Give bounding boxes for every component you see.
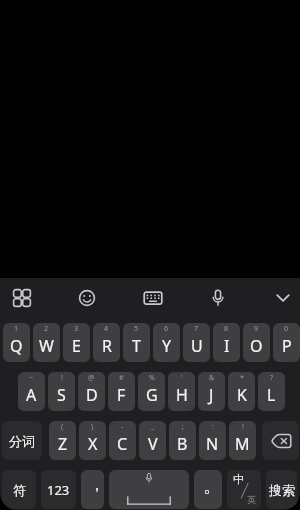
button[interactable]: !: [48, 372, 75, 411]
staticText: @: [88, 373, 95, 383]
button[interactable]: :: [199, 421, 226, 460]
staticText: 0: [284, 324, 289, 334]
staticText: B: [177, 433, 188, 455]
button[interactable]: -: [109, 421, 136, 460]
button[interactable]: 4: [93, 323, 120, 362]
button[interactable]: ~: [18, 372, 45, 411]
button[interactable]: [208, 288, 228, 308]
staticText: 符: [13, 482, 26, 498]
button[interactable]: *: [228, 372, 255, 411]
staticText: 6: [164, 324, 169, 334]
staticText: 搜索: [269, 482, 295, 498]
staticText: Q: [10, 335, 23, 357]
staticText: 8: [224, 324, 229, 334]
button[interactable]: [77, 288, 97, 308]
staticText: -: [121, 422, 124, 432]
staticText: O: [250, 335, 263, 357]
button[interactable]: 123: [41, 470, 76, 509]
staticText: ~: [29, 373, 34, 383]
staticText: N: [206, 433, 219, 455]
button[interactable]: ): [79, 421, 106, 460]
staticText: 2: [44, 324, 49, 334]
button[interactable]: 7: [183, 323, 210, 362]
staticText: C: [117, 433, 128, 455]
staticText: _: [151, 422, 155, 432]
staticText: K: [237, 384, 247, 406]
staticText: I: [224, 335, 230, 357]
button[interactable]: [109, 470, 189, 509]
button[interactable]: _: [139, 421, 166, 460]
button[interactable]: 中: [227, 470, 261, 509]
staticText: V: [148, 433, 158, 455]
button[interactable]: &: [198, 372, 225, 411]
button[interactable]: 1: [3, 323, 30, 362]
button[interactable]: [12, 288, 32, 308]
button[interactable]: [273, 288, 293, 308]
button[interactable]: 8: [213, 323, 240, 362]
staticText: M: [235, 433, 250, 455]
button[interactable]: 分词: [2, 421, 42, 460]
button[interactable]: !: [229, 421, 256, 460]
staticText: 9: [254, 324, 259, 334]
staticText: L: [267, 384, 276, 406]
button[interactable]: [262, 421, 299, 460]
staticText: &: [209, 373, 215, 383]
button[interactable]: %: [138, 372, 165, 411]
button[interactable]: ;: [169, 421, 196, 460]
staticText: %: [149, 373, 155, 383]
staticText: ;: [182, 422, 184, 432]
staticText: S: [57, 384, 66, 406]
staticText: G: [146, 384, 158, 406]
button[interactable]: 搜索: [266, 470, 297, 509]
staticText: !: [242, 422, 244, 432]
staticText: ?: [270, 373, 274, 383]
button[interactable]: 3: [63, 323, 90, 362]
staticText: !: [61, 373, 63, 383]
staticText: #: [119, 373, 124, 383]
staticText: D: [86, 384, 98, 406]
staticText: ): [91, 422, 94, 432]
button[interactable]: ，: [81, 470, 104, 509]
staticText: 中: [233, 472, 244, 486]
button[interactable]: 0: [273, 323, 300, 362]
staticText: ': [181, 373, 183, 383]
staticText: R: [102, 335, 112, 357]
staticText: 英: [247, 494, 256, 505]
staticText: 。: [203, 474, 222, 498]
button[interactable]: 6: [153, 323, 180, 362]
button[interactable]: ': [168, 372, 195, 411]
staticText: 3: [74, 324, 79, 334]
button[interactable]: 符: [2, 470, 36, 509]
staticText: 分词: [9, 433, 35, 449]
staticText: T: [132, 335, 141, 357]
staticText: W: [39, 335, 54, 357]
staticText: H: [176, 384, 188, 406]
staticText: 1: [14, 324, 19, 334]
button[interactable]: [143, 472, 155, 484]
staticText: Z: [58, 433, 68, 455]
staticText: J: [209, 384, 214, 406]
button[interactable]: [143, 288, 163, 308]
button[interactable]: 2: [33, 323, 60, 362]
staticText: 7: [194, 324, 199, 334]
staticText: X: [88, 433, 98, 455]
staticText: *: [240, 373, 244, 383]
button[interactable]: 9: [243, 323, 270, 362]
staticText: 4: [104, 324, 109, 334]
staticText: P: [282, 335, 292, 357]
staticText: ，: [89, 475, 104, 495]
staticText: 5: [134, 324, 139, 334]
button[interactable]: 。: [194, 470, 222, 509]
button[interactable]: @: [78, 372, 105, 411]
button[interactable]: 5: [123, 323, 150, 362]
staticText: Y: [162, 335, 172, 357]
staticText: 123: [47, 481, 70, 499]
button[interactable]: (: [49, 421, 76, 460]
staticText: (: [61, 422, 64, 432]
staticText: E: [72, 335, 81, 357]
staticText: F: [117, 384, 126, 406]
staticText: :: [212, 422, 214, 432]
staticText: A: [26, 384, 37, 406]
button[interactable]: ?: [258, 372, 285, 411]
button[interactable]: #: [108, 372, 135, 411]
